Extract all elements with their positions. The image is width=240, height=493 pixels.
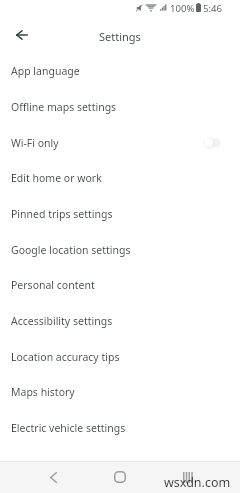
staticText: Settings [99,29,141,44]
button[interactable]: Pinned trips settings [0,203,240,239]
button[interactable]: Personal content [0,274,240,310]
button[interactable]: Back [10,23,34,47]
staticText: 5:46 [203,2,223,15]
button[interactable]: Wi-Fi only toggle [201,133,223,151]
staticText: Wi-Fi only [11,136,59,150]
staticText: Pinned trips settings [11,207,113,221]
button[interactable]: Back [43,467,63,487]
staticText: Location accuracy tips [11,350,120,364]
button[interactable]: App language [0,60,240,96]
button[interactable]: Wi-Fi only [0,132,240,168]
staticText: wsxdn.com [164,474,231,491]
staticText: Electric vehicle settings [11,421,126,435]
button[interactable]: Edit home or work [0,167,240,203]
button[interactable]: Electric vehicle settings [0,417,240,453]
staticText: Personal content [11,278,95,292]
staticText: Google location settings [11,243,131,257]
button[interactable]: Offline maps settings [0,96,240,132]
staticText: Maps history [11,385,75,399]
button[interactable]: Home [110,467,130,487]
button[interactable]: Google location settings [0,239,240,275]
staticText: Accessibility settings [11,314,113,328]
button[interactable]: Location accuracy tips [0,346,240,382]
button[interactable]: Accessibility settings [0,310,240,346]
button[interactable]: Recent apps [178,467,198,487]
staticText: Edit home or work [11,171,102,185]
staticText: 100% [170,2,195,15]
staticText: App language [11,64,80,78]
staticText: Offline maps settings [11,100,117,114]
button[interactable]: Maps history [0,381,240,417]
